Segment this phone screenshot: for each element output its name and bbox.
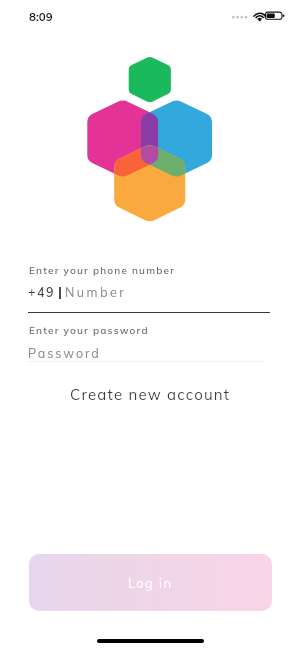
- other: Home indicator: [97, 639, 204, 643]
- staticText: Number: [65, 284, 127, 300]
- staticText: Password: [28, 345, 101, 361]
- staticText: +49: [28, 284, 56, 300]
- staticText: Enter your phone number: [29, 264, 176, 277]
- staticText: Enter your password: [29, 324, 149, 337]
- staticText: 8:09: [29, 9, 53, 23]
- button[interactable]: Log in: [29, 554, 272, 611]
- staticText: Create new account: [70, 385, 231, 404]
- button[interactable]: Create new account: [54, 380, 247, 409]
- button[interactable]: +49: [28, 284, 270, 313]
- button[interactable]: Password: [28, 345, 264, 363]
- staticText: Log in: [128, 575, 173, 591]
